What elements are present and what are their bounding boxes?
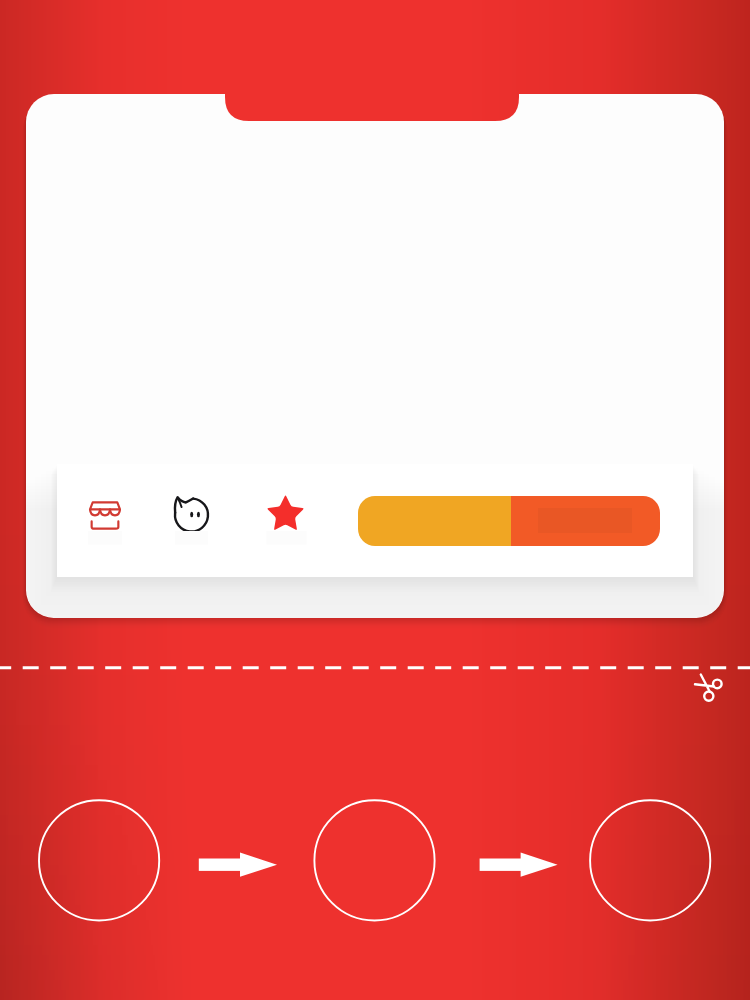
button[interactable]: Favourite <box>261 497 309 545</box>
button[interactable]: Shop <box>81 497 129 545</box>
button[interactable]: Redeem <box>358 496 660 546</box>
button[interactable]: Shop <box>57 464 693 577</box>
button[interactable]: Step <box>314 800 434 920</box>
button[interactable]: Cut out voucher <box>686 664 730 708</box>
button[interactable]: Mascot <box>167 497 215 545</box>
button[interactable]: Step <box>39 800 159 920</box>
button[interactable]: Step <box>590 800 710 920</box>
